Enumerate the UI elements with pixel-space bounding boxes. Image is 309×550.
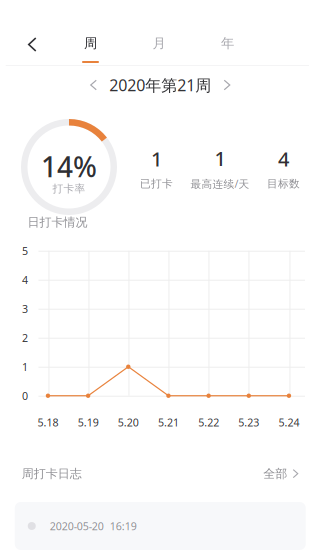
staticText: 目标数 xyxy=(267,177,300,190)
button[interactable]: 月 xyxy=(125,24,193,65)
staticText: 5.19 xyxy=(78,415,99,429)
button[interactable]: 全部 xyxy=(263,460,298,487)
staticText: 14% xyxy=(41,148,97,185)
button[interactable]: 周 xyxy=(56,24,125,65)
staticText: 5 xyxy=(22,244,28,258)
staticText: 1 xyxy=(22,360,28,374)
staticText: 已打卡 xyxy=(140,177,173,190)
staticText: 5.22 xyxy=(198,415,219,429)
staticText: 日打卡情况 xyxy=(27,215,87,230)
staticText: 5.18 xyxy=(37,415,58,429)
button[interactable]: Back xyxy=(6,24,56,65)
staticText: 0 xyxy=(22,389,28,403)
button[interactable]: Next week xyxy=(219,73,235,97)
staticText: 月 xyxy=(152,35,165,51)
staticText: 4 xyxy=(22,273,28,287)
staticText: 年 xyxy=(221,35,234,51)
button[interactable]: 2020-05-20 16:19 xyxy=(15,502,306,550)
staticText: 2020-05-20 16:19 xyxy=(50,519,137,533)
staticText: 4 xyxy=(278,145,289,172)
button[interactable]: 年 xyxy=(193,24,262,65)
staticText: 1 xyxy=(151,145,162,172)
staticText: 最高连续/天 xyxy=(190,177,249,191)
button[interactable]: Previous week xyxy=(86,73,101,97)
staticText: 周 xyxy=(84,35,97,51)
staticText: 5.21 xyxy=(158,415,179,429)
staticText: 5.20 xyxy=(118,415,139,429)
staticText: 全部 xyxy=(263,466,287,481)
staticText: 5.24 xyxy=(278,415,299,429)
staticText: 打卡率 xyxy=(52,182,85,195)
staticText: 5.23 xyxy=(238,415,259,429)
staticText: 周打卡日志 xyxy=(22,466,82,481)
staticText: 2020年第21周 xyxy=(109,74,211,96)
staticText: 2 xyxy=(22,331,28,345)
staticText: 1 xyxy=(214,145,225,172)
staticText: 3 xyxy=(22,302,28,316)
